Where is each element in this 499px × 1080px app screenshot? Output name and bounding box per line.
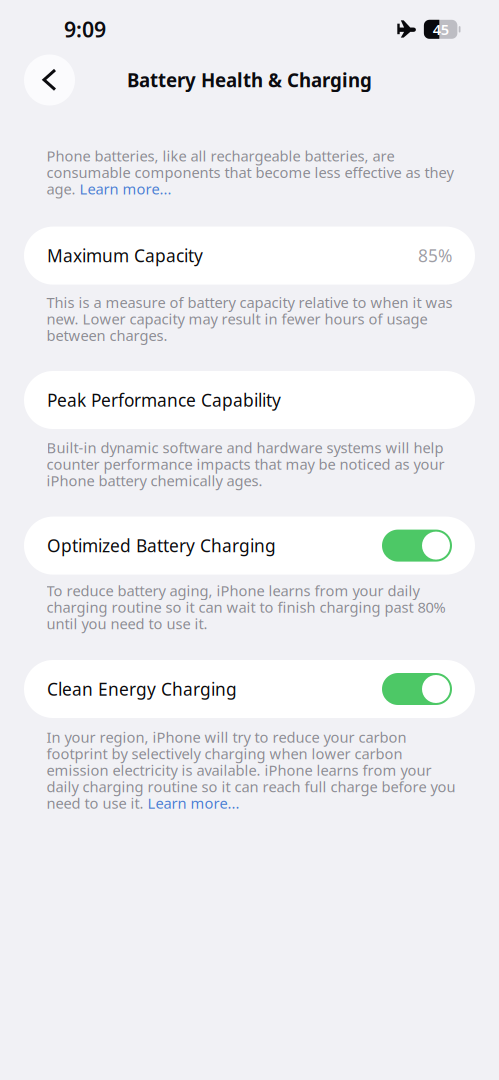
staticText: In your region, iPhone will try to reduc… [46,729,455,811]
staticText: 45 [433,20,449,39]
staticText: Peak Performance Capability [47,388,281,411]
staticText: Built-in dynamic software and hardware s… [46,439,444,489]
staticText: To reduce battery aging, iPhone learns f… [46,582,445,632]
staticText: 85% [418,244,452,267]
button[interactable]: Back [24,54,75,105]
staticText: Battery Health & Charging [127,68,372,92]
staticText: 9:09 [64,15,106,43]
button[interactable]: Optimized Battery Charging [24,517,475,575]
staticText: This is a measure of battery capacity re… [46,294,452,343]
button[interactable]: Peak Performance Capability [24,371,475,429]
staticText: Optimized Battery Charging [47,534,276,557]
button[interactable]: Maximum Capacity [24,227,475,285]
button[interactable]: Clean Energy Charging [24,660,475,718]
staticText: Phone batteries, like all rechargeable b… [46,147,453,197]
staticText: Clean Energy Charging [47,677,237,700]
staticText: Maximum Capacity [47,244,203,267]
